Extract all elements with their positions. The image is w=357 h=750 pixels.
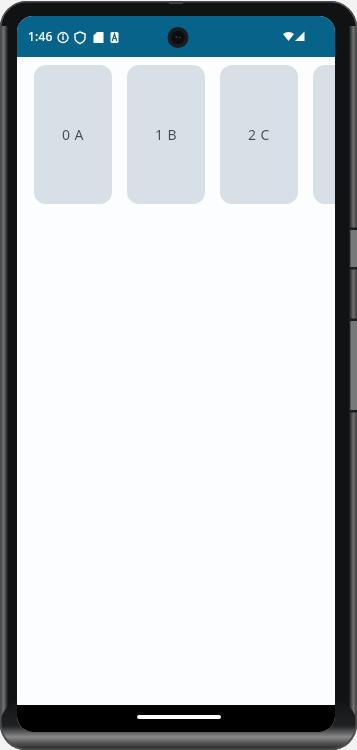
staticText: 1:46 <box>28 28 53 44</box>
staticText: 2 C <box>248 125 270 144</box>
button[interactable]: 3 D <box>313 65 335 204</box>
staticText: 0 A <box>62 125 84 144</box>
staticText: 1 B <box>155 125 177 144</box>
button[interactable]: 2 C <box>220 65 298 204</box>
button[interactable]: 0 A <box>34 65 112 204</box>
button[interactable]: 1 B <box>127 65 205 204</box>
